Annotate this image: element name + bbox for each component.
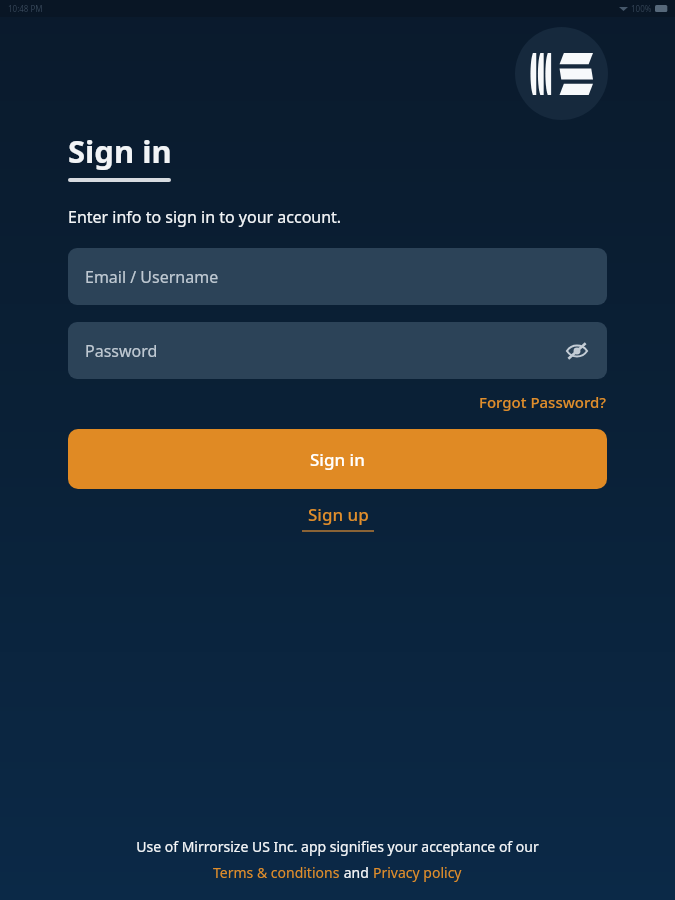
button[interactable]: Password	[68, 322, 607, 379]
staticText: 100%	[631, 3, 652, 14]
staticText: and	[340, 863, 373, 882]
staticText: Sign in	[310, 448, 365, 471]
staticText: Sign up	[308, 503, 369, 526]
staticText: Privacy policy	[373, 863, 462, 882]
button[interactable]: Sign up	[302, 503, 374, 532]
staticText: Password	[85, 340, 158, 362]
button[interactable]: Terms & conditions	[213, 863, 340, 882]
staticText: Email / Username	[85, 266, 219, 288]
other: Mirrorsize logo	[515, 27, 608, 120]
button[interactable]: Show password	[557, 331, 597, 371]
staticText: Terms & conditions	[213, 863, 340, 882]
button[interactable]: Privacy policy	[373, 863, 462, 882]
staticText: 10:48 PM	[8, 3, 43, 14]
staticText: Forgot Password?	[479, 392, 607, 412]
staticText: Enter info to sign in to your account.	[68, 206, 342, 228]
staticText: Use of Mirrorsize US Inc. app signifies …	[136, 837, 539, 856]
button[interactable]: Sign in	[68, 429, 607, 489]
staticText: Sign in	[68, 130, 172, 172]
button[interactable]: Forgot Password?	[479, 389, 607, 415]
button[interactable]: Email / Username	[68, 248, 607, 305]
